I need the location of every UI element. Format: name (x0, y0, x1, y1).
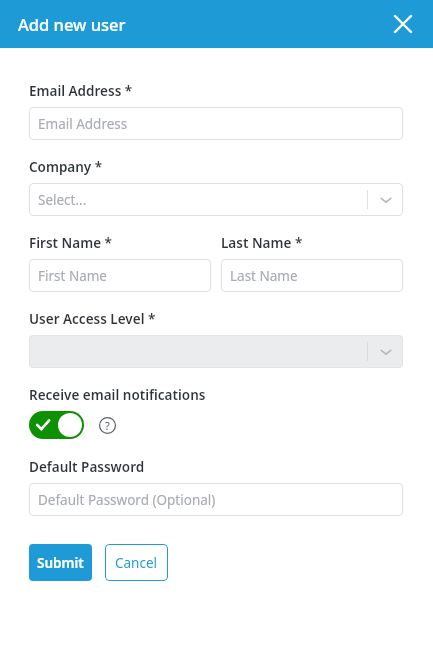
button[interactable]: Help (97, 415, 117, 435)
staticText: User Access Level * (29, 310, 156, 328)
staticText: Default Password (29, 458, 145, 476)
staticText: Default Password (Optional) (38, 491, 216, 509)
button[interactable]: Receive email notifications toggle, on (29, 411, 84, 439)
button[interactable]: Submit (29, 544, 92, 581)
button[interactable]: Select... (29, 183, 403, 216)
staticText: First Name (38, 267, 107, 285)
staticText: Receive email notifications (29, 386, 206, 404)
staticText: Email Address * (29, 82, 133, 100)
staticText: Last Name (230, 267, 298, 285)
staticText: Add new user (18, 13, 126, 35)
staticText: ? (105, 418, 110, 433)
staticText: Company * (29, 158, 103, 176)
button[interactable]: Email Address (29, 107, 403, 140)
button[interactable]: Cancel (105, 544, 168, 581)
staticText: First Name * (29, 234, 112, 252)
staticText: Last Name * (221, 234, 303, 252)
button[interactable]: Default Password (Optional) (29, 483, 403, 516)
staticText: Cancel (115, 554, 158, 572)
button[interactable]: Close (390, 11, 416, 37)
staticText: Submit (37, 554, 84, 572)
staticText: Select... (38, 191, 87, 209)
button[interactable]: First Name (29, 259, 211, 292)
staticText: Email Address (38, 115, 128, 133)
button[interactable]: Last Name (221, 259, 403, 292)
